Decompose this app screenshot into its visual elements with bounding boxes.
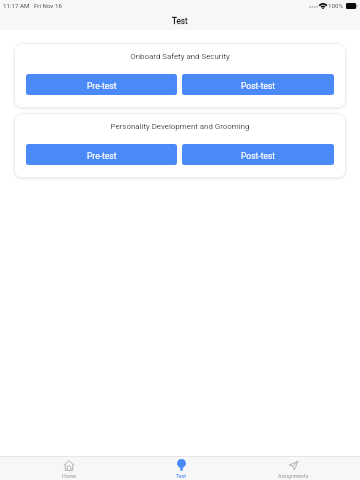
staticText: Post-test	[241, 81, 276, 91]
staticText: Fri Nov 16	[34, 2, 62, 9]
staticText: Pre-test	[87, 151, 117, 161]
staticText: Assignments	[278, 473, 309, 479]
staticText: 11:17 AM	[3, 2, 30, 9]
button[interactable]: Post-test	[182, 144, 334, 165]
staticText: Pre-test	[87, 81, 117, 91]
button[interactable]: Test	[125, 457, 237, 480]
button[interactable]: Pre-test	[26, 74, 177, 95]
staticText: Post-test	[241, 151, 276, 161]
button[interactable]: Home	[12, 457, 125, 480]
button[interactable]: Pre-test	[26, 144, 177, 165]
staticText: Test	[172, 16, 188, 26]
staticText: Personality Development and Grooming	[26, 122, 334, 131]
staticText: Test	[176, 473, 186, 479]
staticText: 100%	[328, 2, 343, 9]
staticText: Onboard Safety and Security	[26, 52, 334, 61]
button[interactable]: Assignments	[237, 457, 349, 480]
staticText: Home	[62, 473, 76, 479]
button[interactable]: Post-test	[182, 74, 334, 95]
